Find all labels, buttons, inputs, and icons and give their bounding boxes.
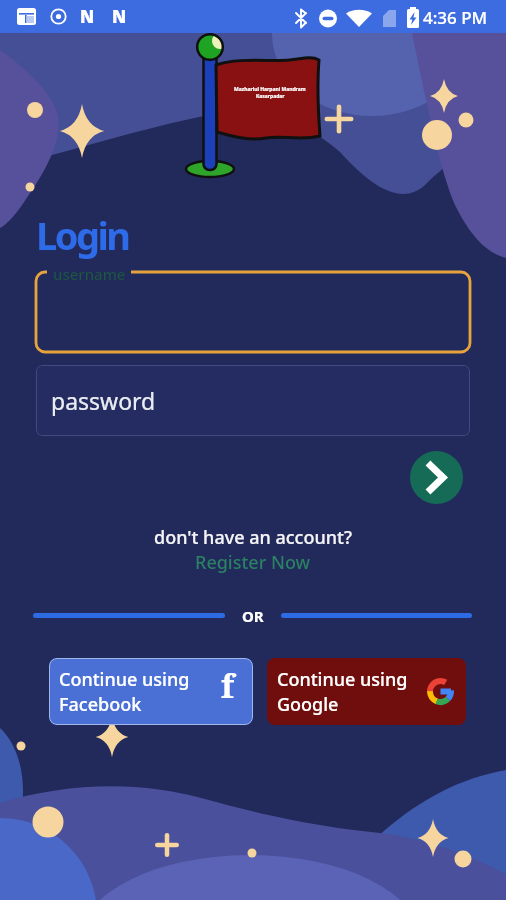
button[interactable]: password xyxy=(36,365,470,436)
button[interactable]: Continue using xyxy=(267,658,466,725)
staticText: Kasarpadar xyxy=(256,93,285,100)
button[interactable]: username xyxy=(36,272,470,352)
staticText: N xyxy=(112,5,127,28)
staticText: Register Now xyxy=(195,550,311,575)
staticText: Mazharlul Harpani Mandram xyxy=(234,86,306,93)
button[interactable] xyxy=(410,451,463,504)
staticText: Continue using xyxy=(277,667,408,692)
staticText: Login xyxy=(36,209,129,261)
staticText: 4:36 PM xyxy=(423,6,488,29)
button[interactable]: Register Now xyxy=(195,550,311,575)
staticText: f xyxy=(221,664,235,708)
staticText: password xyxy=(51,385,156,416)
staticText: Continue using xyxy=(59,667,190,692)
staticText: Google xyxy=(277,692,339,717)
staticText: N xyxy=(80,5,95,28)
staticText: OR xyxy=(242,606,264,626)
staticText: username xyxy=(53,264,126,284)
staticText: Facebook xyxy=(59,692,142,717)
staticText: don't have an account? xyxy=(154,525,352,550)
button[interactable]: Continue using xyxy=(49,658,253,725)
